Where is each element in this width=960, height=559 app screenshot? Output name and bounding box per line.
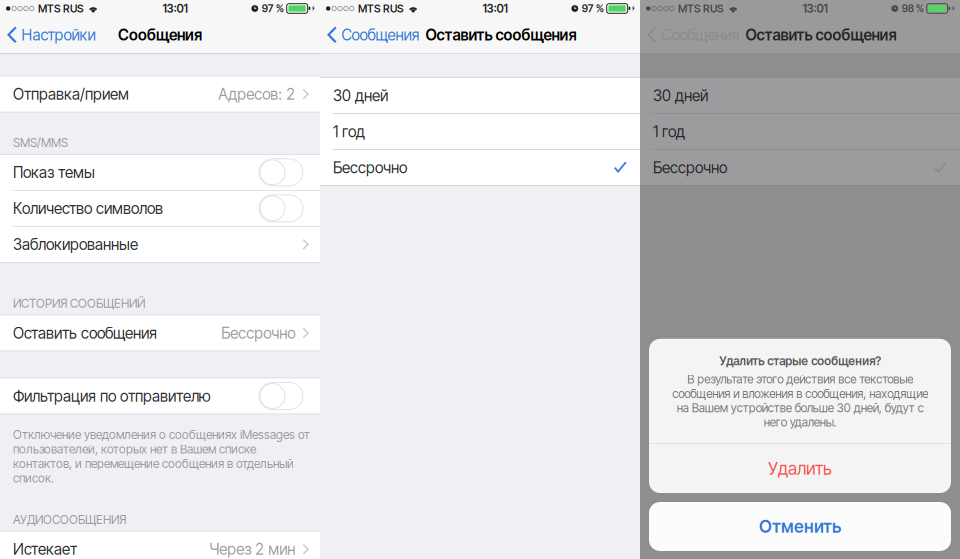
staticText: MTS RUS xyxy=(358,2,404,15)
staticText: Отключение уведомления о сообщениях iMes… xyxy=(13,427,310,485)
button[interactable]: Бессрочно xyxy=(320,150,640,185)
staticText: MTS RUS xyxy=(678,2,724,15)
staticText: Оставить сообщения xyxy=(425,26,576,44)
staticText: Оставить сообщения xyxy=(13,324,157,342)
button[interactable]: Настройки xyxy=(0,17,101,53)
button[interactable]: 1 год xyxy=(320,114,640,149)
staticText: Бессрочно xyxy=(333,158,407,177)
staticText: 97 % xyxy=(262,2,284,15)
staticText: Фильтрация по отправителю xyxy=(13,387,211,405)
button[interactable]: Количество символов xyxy=(0,191,320,226)
staticText: Через 2 мин xyxy=(209,540,295,559)
button[interactable]: 1 год xyxy=(640,114,960,149)
staticText: Бессрочно xyxy=(221,324,295,342)
staticText: 13:01 xyxy=(802,1,827,15)
staticText: Показ темы xyxy=(13,163,95,182)
staticText: 98 % xyxy=(902,2,924,15)
staticText: 97 % xyxy=(582,2,604,15)
button[interactable]: Показ темы xyxy=(0,155,320,190)
button[interactable]: Отменить xyxy=(649,502,951,551)
staticText: 30 дней xyxy=(653,86,708,105)
button[interactable]: Заблокированные xyxy=(0,227,320,262)
staticText: Бессрочно xyxy=(653,158,727,177)
staticText: Оставить сообщения xyxy=(745,26,896,44)
staticText: Удалить старые сообщения? xyxy=(719,354,881,368)
button[interactable]: Отправка/прием xyxy=(0,76,320,112)
button[interactable]: 30 дней xyxy=(640,78,960,113)
button[interactable]: Бессрочно xyxy=(640,150,960,185)
button[interactable]: Удалить xyxy=(649,444,951,493)
staticText: Удалить xyxy=(768,458,832,479)
button[interactable]: Сообщения xyxy=(320,17,419,53)
staticText: Заблокированные xyxy=(13,235,138,254)
staticText: Количество символов xyxy=(13,199,163,218)
staticText: 13:01 xyxy=(162,1,187,15)
staticText: ИСТОРИЯ СООБЩЕНИЙ xyxy=(13,296,145,311)
staticText: Сообщения xyxy=(341,26,419,44)
staticText: 1 год xyxy=(333,122,365,141)
button[interactable]: Фильтрация по отправителю xyxy=(0,378,320,414)
button[interactable]: 30 дней xyxy=(320,78,640,113)
staticText: Истекает xyxy=(13,540,77,559)
staticText: АУДИОСООБЩЕНИЯ xyxy=(13,512,126,527)
button[interactable]: Сообщения xyxy=(640,17,739,53)
staticText: 1 год xyxy=(653,122,685,141)
staticText: 13:01 xyxy=(482,1,507,15)
button[interactable]: Истекает xyxy=(0,532,320,559)
staticText: Отменить xyxy=(759,516,841,537)
staticText: Сообщения xyxy=(661,26,739,44)
staticText: SMS/MMS xyxy=(13,135,68,150)
staticText: Сообщения xyxy=(118,26,202,44)
staticText: Настройки xyxy=(21,26,95,44)
staticText: MTS RUS xyxy=(38,2,84,15)
button[interactable]: Оставить сообщения xyxy=(0,315,320,351)
staticText: В результате этого действия все текстовы… xyxy=(672,372,928,429)
staticText: Отправка/прием xyxy=(13,85,129,103)
staticText: 30 дней xyxy=(333,86,388,105)
staticText: Адресов: 2 xyxy=(218,85,295,103)
